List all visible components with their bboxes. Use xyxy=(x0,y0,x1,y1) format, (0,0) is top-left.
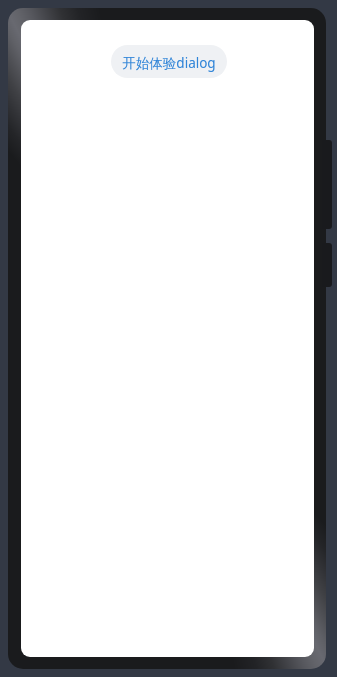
staticText: 开始体验dialog xyxy=(111,54,227,72)
button[interactable]: 开始体验dialog xyxy=(111,45,227,78)
